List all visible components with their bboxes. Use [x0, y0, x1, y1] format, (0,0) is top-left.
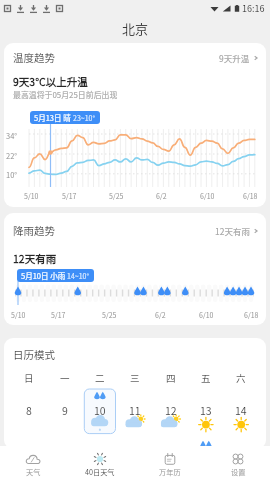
staticText: 二: [95, 371, 105, 385]
button[interactable]: 降雨趋势: [4, 220, 266, 241]
staticText: 10°: [6, 169, 26, 180]
staticText: 5/17: [62, 191, 77, 201]
button[interactable]: 40日天气: [67, 446, 133, 480]
staticText: 12天有雨: [13, 251, 57, 266]
button[interactable]: 8: [12, 389, 46, 434]
button[interactable]: 温度趋势: [4, 47, 266, 68]
staticText: 天气: [26, 467, 41, 477]
staticText: 北京: [122, 19, 149, 38]
staticText: 6/2: [156, 191, 167, 201]
button[interactable]: 14: [224, 389, 258, 434]
staticText: 日: [24, 371, 34, 385]
button[interactable]: 9: [48, 389, 82, 434]
button[interactable]: 11: [118, 389, 152, 434]
staticText: 6/2: [155, 310, 166, 320]
staticText: 5/25: [102, 310, 117, 320]
staticText: 9: [62, 403, 68, 418]
button[interactable]: 万年历: [137, 446, 203, 480]
staticText: 9天升温: [219, 52, 250, 64]
staticText: 6/10: [199, 310, 214, 320]
staticText: 22°: [6, 150, 26, 161]
staticText: 16:16: [242, 2, 265, 15]
staticText: 11: [129, 403, 141, 418]
staticText: 5/17: [51, 310, 66, 320]
staticText: 四: [166, 371, 176, 385]
staticText: 12天有雨: [215, 225, 250, 237]
staticText: 40日天气: [85, 467, 115, 477]
other: 40日天气: [92, 453, 108, 465]
staticText: 温度趋势: [13, 50, 55, 65]
button[interactable]: 天气: [0, 446, 66, 480]
staticText: 降雨趋势: [13, 223, 55, 238]
staticText: 10: [94, 403, 106, 418]
staticText: 三: [130, 371, 140, 385]
staticText: 8: [26, 403, 32, 418]
staticText: 5/10: [11, 310, 26, 320]
staticText: 34°: [6, 130, 26, 141]
staticText: 日历模式: [13, 347, 55, 362]
staticText: 设置: [231, 467, 246, 477]
staticText: 14: [235, 403, 247, 418]
staticText: 13: [200, 403, 212, 418]
staticText: 最高温将于05月25日前后出现: [13, 89, 118, 100]
staticText: 5/25: [109, 191, 124, 201]
button[interactable]: 13: [189, 389, 223, 434]
staticText: 五: [201, 371, 211, 385]
button[interactable]: 10: [83, 389, 117, 434]
staticText: 14~10°: [67, 271, 90, 281]
staticText: 23~10°: [73, 113, 96, 123]
staticText: 万年历: [159, 467, 181, 477]
staticText: 6/18: [243, 191, 258, 201]
staticText: 5月13日 晴: [34, 112, 73, 123]
staticText: 9天3°C以上升温: [13, 74, 88, 89]
button[interactable]: 设置: [205, 446, 270, 480]
staticText: 5月10日 小雨: [21, 270, 67, 281]
staticText: 六: [236, 371, 246, 385]
staticText: 6/18: [244, 310, 259, 320]
other: 设置: [230, 453, 246, 465]
staticText: 一: [60, 371, 70, 385]
other: 万年历: [162, 453, 178, 465]
button[interactable]: 12: [154, 389, 188, 434]
staticText: 6/10: [200, 191, 215, 201]
staticText: 12: [165, 403, 177, 418]
staticText: 5/10: [24, 191, 39, 201]
other: 天气: [25, 453, 41, 465]
